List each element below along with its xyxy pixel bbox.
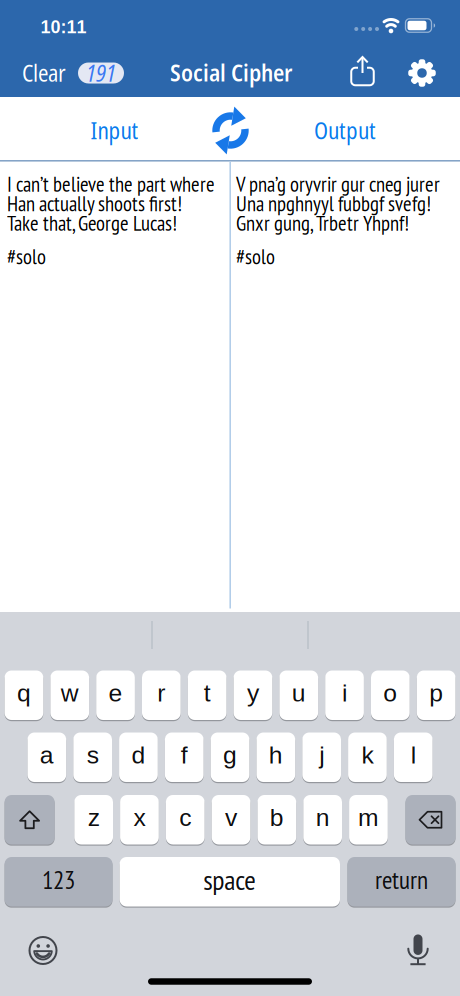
button[interactable]: x [120, 794, 159, 845]
button[interactable]: c [166, 794, 205, 845]
staticText: u [292, 679, 306, 707]
staticText: Input [90, 115, 138, 146]
staticText: i [342, 679, 347, 707]
button[interactable]: a [27, 731, 66, 783]
staticText: e [108, 679, 122, 707]
staticText: o [383, 679, 397, 707]
staticText: Output [314, 115, 376, 146]
button[interactable]: f [165, 731, 204, 783]
staticText: t [204, 679, 211, 707]
button[interactable]: m [349, 794, 388, 845]
button[interactable]: u [279, 669, 318, 721]
button[interactable]: j [302, 731, 341, 783]
staticText: V pna’g oryvrir gur cneg jurer Una npghn… [236, 174, 440, 233]
staticText: f [181, 741, 188, 769]
button[interactable]: Swap [204, 104, 256, 156]
button[interactable]: v [212, 794, 250, 845]
button[interactable]: s [73, 731, 112, 783]
button[interactable]: Input [90, 115, 138, 146]
button[interactable]: Clear [22, 58, 124, 88]
staticText: h [269, 741, 283, 769]
staticText: r [157, 679, 165, 707]
button[interactable]: Settings [407, 58, 437, 88]
button[interactable]: q [5, 669, 43, 721]
staticText: I can’t believe the part where Han actua… [7, 174, 215, 233]
staticText: 10:11 [40, 17, 86, 37]
staticText: Social Cipher [170, 57, 292, 88]
button[interactable]: o [371, 669, 410, 721]
staticText: w [61, 679, 79, 707]
button[interactable]: w [50, 669, 89, 721]
button[interactable]: t [188, 669, 226, 721]
staticText: c [179, 804, 191, 831]
button[interactable]: n [303, 794, 342, 845]
staticText: m [358, 804, 379, 831]
button[interactable]: e [96, 669, 135, 721]
button[interactable]: p [417, 669, 455, 721]
staticText: g [223, 741, 237, 769]
staticText: 123 [42, 863, 75, 896]
button[interactable]: r [142, 669, 181, 721]
staticText: s [87, 741, 99, 769]
staticText: x [133, 804, 145, 831]
staticText: v [225, 804, 237, 831]
staticText: d [131, 741, 145, 769]
button[interactable]: z [74, 794, 113, 845]
button[interactable]: h [256, 731, 295, 783]
button[interactable]: Shift [5, 794, 55, 845]
button[interactable]: return [347, 856, 455, 907]
staticText: b [270, 804, 284, 831]
staticText: return [375, 863, 428, 896]
staticText: y [247, 679, 259, 707]
button[interactable]: g [211, 731, 249, 783]
staticText: p [429, 679, 443, 707]
staticText: a [40, 741, 54, 769]
staticText: j [319, 741, 324, 769]
button[interactable]: Output [314, 115, 376, 146]
button[interactable]: d [119, 731, 158, 783]
staticText: k [361, 741, 373, 769]
staticText: #solo [236, 243, 275, 270]
button[interactable]: Share [347, 55, 377, 87]
button[interactable]: Emoji [28, 935, 58, 965]
button[interactable]: 123 [5, 856, 112, 907]
staticText: 191 [86, 58, 116, 88]
staticText: Clear [22, 58, 66, 88]
staticText: space [203, 861, 256, 898]
button[interactable]: Dictate [406, 933, 430, 965]
button[interactable]: y [234, 669, 272, 721]
button[interactable]: Delete [405, 794, 455, 845]
staticText: q [17, 679, 31, 707]
button[interactable]: b [257, 794, 296, 845]
staticText: z [88, 804, 100, 831]
button[interactable]: l [394, 731, 433, 783]
button[interactable]: k [348, 731, 387, 783]
button[interactable]: space [120, 856, 340, 907]
staticText: #solo [7, 243, 46, 270]
button[interactable]: i [325, 669, 364, 721]
staticText: l [411, 741, 416, 769]
staticText: n [316, 804, 330, 831]
